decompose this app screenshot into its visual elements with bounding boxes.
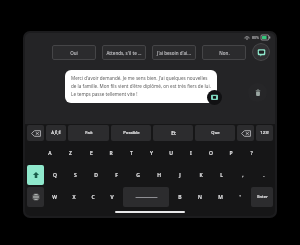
staticText: V (110, 194, 114, 201)
button[interactable]: Changer de langue (27, 187, 44, 207)
staticText: B (178, 194, 182, 201)
staticText: Oui (70, 50, 78, 56)
staticText: 123! (260, 130, 269, 136)
button[interactable]: W (46, 187, 63, 207)
staticText: Enter (257, 194, 268, 200)
button[interactable]: P (222, 143, 240, 163)
staticText: T (130, 150, 133, 157)
button[interactable]: R (102, 143, 120, 163)
button[interactable]: G (128, 165, 147, 185)
button[interactable]: Fait (68, 125, 109, 141)
staticText: J (179, 172, 181, 179)
button[interactable]: Espace (123, 187, 169, 207)
button[interactable]: N (191, 187, 209, 207)
staticText: O (209, 150, 213, 157)
button[interactable]: Merci d'avoir demandé. Je me sens bien. … (65, 70, 217, 103)
staticText: À,Ê,É (51, 130, 61, 136)
staticText: M (218, 194, 223, 201)
button[interactable]: Oui (52, 45, 96, 60)
staticText: Non. (219, 50, 230, 56)
button[interactable]: C (84, 187, 101, 207)
staticText: E (90, 150, 93, 157)
button[interactable]: B (171, 187, 189, 207)
button[interactable]: Attends, s'il te ... (102, 45, 146, 60)
button[interactable]: U (162, 143, 180, 163)
button[interactable]: J'ai besoin d'ai... (152, 45, 196, 60)
button[interactable]: O (202, 143, 220, 163)
staticText: ' (239, 194, 241, 201)
staticText: P (229, 150, 233, 157)
button[interactable]: L (212, 165, 231, 185)
button[interactable]: H (149, 165, 168, 185)
staticText: W (52, 194, 57, 201)
button[interactable]: Q (46, 165, 64, 185)
staticText: G (136, 172, 140, 179)
button[interactable]: ? (242, 143, 260, 163)
button[interactable]: À,Ê,É (46, 125, 66, 141)
button[interactable]: ' (231, 187, 249, 207)
staticText: Y (150, 150, 153, 157)
button[interactable]: D (86, 165, 105, 185)
button[interactable]: Et (153, 125, 193, 141)
staticText: Fait (85, 130, 93, 136)
staticText: A (48, 150, 52, 157)
staticText: I (190, 150, 192, 157)
staticText: Merci d'avoir demandé. Je me sens bien. … (71, 75, 211, 98)
staticText: , (242, 172, 244, 179)
button[interactable]: Z (61, 143, 80, 163)
staticText: L (220, 172, 223, 179)
staticText: K (199, 172, 203, 179)
staticText: Q (53, 172, 57, 179)
button[interactable]: I (182, 143, 200, 163)
button[interactable]: 123! (256, 125, 273, 141)
staticText: J'ai besoin d'ai... (157, 50, 191, 56)
staticText: ? (250, 150, 253, 157)
staticText: C (91, 194, 95, 201)
button[interactable]: S (66, 165, 84, 185)
staticText: R (109, 150, 113, 157)
staticText: F (115, 172, 118, 179)
button[interactable]: K (191, 165, 210, 185)
button[interactable]: Non. (202, 45, 246, 60)
button[interactable]: Retour arrière (27, 125, 44, 141)
button[interactable]: X (65, 187, 82, 207)
button[interactable]: . (254, 165, 273, 185)
button[interactable]: Envoyer (207, 90, 222, 105)
button[interactable]: Que (195, 125, 235, 141)
staticText: Et (171, 130, 176, 137)
staticText: Z (69, 150, 72, 157)
button[interactable]: Enter (251, 187, 273, 207)
button[interactable]: Retour arrière (237, 125, 254, 141)
button[interactable]: Y (142, 143, 160, 163)
staticText: D (94, 172, 98, 179)
button[interactable]: T (122, 143, 140, 163)
staticText: Possible (123, 130, 140, 136)
staticText: H (157, 172, 161, 179)
staticText: Que (211, 130, 220, 136)
staticText: X (72, 194, 76, 201)
button[interactable]: , (233, 165, 252, 185)
staticText: . (263, 172, 265, 179)
button[interactable]: Clavier (252, 43, 270, 61)
button[interactable]: Supprimer (248, 83, 267, 102)
button[interactable]: Possible (111, 125, 151, 141)
staticText: U (169, 150, 173, 157)
button[interactable]: A (40, 143, 59, 163)
button[interactable]: E (82, 143, 100, 163)
button[interactable]: J (170, 165, 189, 185)
staticText: N (198, 194, 202, 201)
button[interactable]: V (103, 187, 121, 207)
staticText: 80% (252, 35, 259, 40)
staticText: Attends, s'il te ... (106, 50, 142, 56)
button[interactable]: Majuscule (27, 165, 44, 185)
button[interactable]: F (107, 165, 126, 185)
staticText: S (74, 172, 77, 179)
button[interactable]: M (211, 187, 229, 207)
